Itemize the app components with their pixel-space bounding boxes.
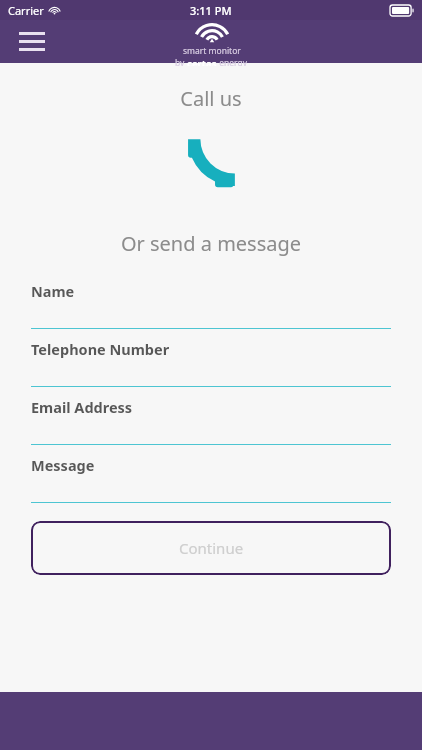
staticText: Or send a message (0, 230, 422, 257)
button[interactable]: Call us (172, 124, 250, 202)
staticText: certas (187, 57, 217, 66)
staticText: Carrier (8, 3, 44, 18)
staticText: Continue (179, 538, 244, 558)
button[interactable]: Telephone Number (0, 329, 422, 387)
staticText: Call us (0, 85, 422, 112)
staticText: Telephone Number (31, 339, 170, 359)
staticText: energy (217, 57, 248, 66)
button[interactable]: Name (0, 271, 422, 329)
button[interactable]: Continue (31, 521, 391, 575)
staticText: smart monitor (183, 45, 241, 57)
staticText: 3:11 PM (190, 3, 232, 18)
staticText: by (175, 57, 187, 66)
staticText: Email Address (31, 397, 133, 417)
button[interactable]: Message (0, 445, 422, 503)
staticText: Name (31, 281, 75, 301)
staticText: Message (31, 455, 95, 475)
button[interactable]: Email Address (0, 387, 422, 445)
button[interactable]: Menu (10, 20, 54, 63)
